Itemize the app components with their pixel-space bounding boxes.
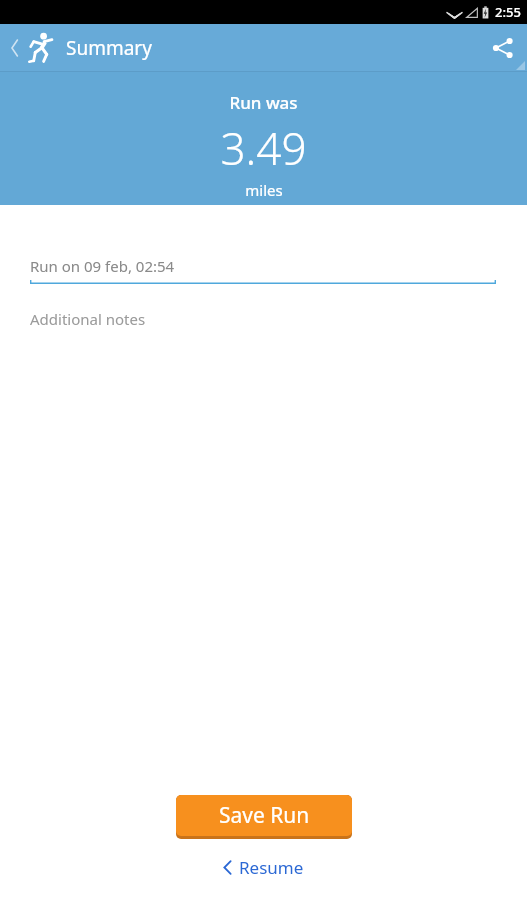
button[interactable]: Save Run <box>176 795 352 839</box>
staticText: Run on 09 feb, 02:54 <box>30 256 175 276</box>
staticText: miles <box>245 180 283 200</box>
button[interactable]: Share <box>479 24 527 72</box>
staticText: Run was <box>229 91 298 114</box>
button[interactable]: Back <box>4 24 26 72</box>
staticText: Resume <box>239 856 304 879</box>
button[interactable]: Additional notes <box>30 306 496 332</box>
staticText: Summary <box>66 35 152 61</box>
button[interactable]: Run on 09 feb, 02:54 <box>30 252 496 280</box>
staticText: 2:55 <box>495 3 521 21</box>
staticText: 3.49 <box>220 118 307 178</box>
staticText: Additional notes <box>30 309 146 329</box>
button[interactable]: Resume <box>213 853 314 882</box>
staticText: Save Run <box>219 801 310 830</box>
